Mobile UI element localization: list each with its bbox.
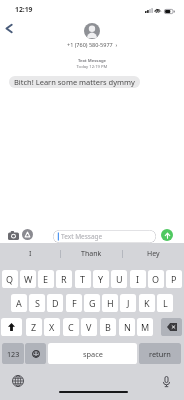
staticText: J bbox=[127, 297, 130, 309]
staticText: B bbox=[105, 321, 111, 333]
staticText: Q bbox=[6, 273, 14, 285]
staticText: 123 bbox=[7, 349, 20, 359]
button[interactable]: P bbox=[166, 270, 182, 288]
button[interactable]: I bbox=[130, 270, 146, 288]
staticText: U bbox=[116, 273, 123, 285]
button[interactable]: U bbox=[111, 270, 127, 288]
button[interactable]: O bbox=[148, 270, 164, 288]
staticText: Thank bbox=[81, 249, 102, 259]
button[interactable]: Camera bbox=[6, 228, 20, 242]
staticText: Text Message bbox=[61, 232, 103, 241]
button[interactable]: E bbox=[38, 270, 54, 288]
button[interactable]: Thank bbox=[61, 243, 122, 265]
staticText: Hey bbox=[147, 249, 160, 259]
staticText: P bbox=[171, 273, 177, 285]
button[interactable]: Y bbox=[93, 270, 109, 288]
button[interactable]: J bbox=[120, 294, 136, 312]
staticText: T bbox=[80, 273, 86, 285]
staticText: V bbox=[86, 321, 92, 333]
staticText: F bbox=[72, 297, 77, 309]
button[interactable]: Backspace bbox=[161, 318, 182, 336]
button[interactable]: Send bbox=[161, 229, 173, 241]
button[interactable]: L bbox=[157, 294, 173, 312]
staticText: S bbox=[35, 297, 40, 309]
button[interactable]: Apps bbox=[22, 229, 33, 240]
button[interactable]: Z bbox=[26, 318, 42, 336]
staticText: E bbox=[43, 273, 49, 285]
button[interactable]: Back bbox=[1, 20, 17, 37]
staticText: +1 (760) 580-5977 › bbox=[67, 41, 118, 48]
button[interactable]: W bbox=[20, 270, 36, 288]
button[interactable]: +1 (760) 580-5977 › bbox=[0, 23, 184, 48]
button[interactable]: Q bbox=[2, 270, 18, 288]
staticText: return bbox=[149, 349, 171, 359]
button[interactable]: I bbox=[0, 243, 60, 265]
button[interactable]: D bbox=[47, 294, 63, 312]
staticText: I bbox=[29, 249, 32, 259]
button[interactable]: B bbox=[100, 318, 116, 336]
button[interactable]: Dictate bbox=[159, 374, 173, 388]
staticText: W bbox=[24, 273, 33, 285]
button[interactable]: H bbox=[102, 294, 118, 312]
staticText: D bbox=[52, 297, 59, 309]
staticText: O bbox=[152, 273, 160, 285]
button[interactable]: T bbox=[75, 270, 91, 288]
button[interactable]: 123 bbox=[2, 343, 24, 364]
staticText: A bbox=[16, 297, 22, 309]
staticText: G bbox=[89, 297, 96, 309]
button[interactable]: R bbox=[56, 270, 72, 288]
staticText: N bbox=[124, 321, 131, 333]
staticText: Y bbox=[98, 273, 104, 285]
staticText: H bbox=[107, 297, 114, 309]
button[interactable]: Bitch! Learn some matters dymmy bbox=[9, 76, 140, 88]
staticText: R bbox=[61, 273, 67, 285]
staticText: Z bbox=[31, 321, 37, 333]
button[interactable]: Text Message bbox=[53, 230, 156, 243]
button[interactable]: space bbox=[48, 343, 137, 364]
button[interactable]: A bbox=[11, 294, 27, 312]
staticText: space bbox=[83, 349, 103, 359]
button[interactable]: Change keyboard bbox=[11, 374, 25, 388]
button[interactable]: N bbox=[119, 318, 135, 336]
button[interactable]: K bbox=[139, 294, 155, 312]
button[interactable]: return bbox=[139, 343, 181, 364]
button[interactable]: Shift bbox=[1, 318, 22, 336]
staticText: Bitch! Learn some matters dymmy bbox=[14, 77, 135, 87]
button[interactable]: S bbox=[29, 294, 45, 312]
staticText: Today 12:19 PM bbox=[0, 64, 184, 70]
staticText: C bbox=[68, 321, 74, 333]
button[interactable]: F bbox=[66, 294, 82, 312]
staticText: X bbox=[49, 321, 55, 333]
staticText: K bbox=[144, 297, 150, 309]
button[interactable]: Emoji bbox=[25, 343, 46, 364]
staticText: M bbox=[141, 321, 150, 333]
staticText: L bbox=[163, 297, 168, 309]
button[interactable]: C bbox=[63, 318, 79, 336]
button[interactable]: Hey bbox=[123, 243, 184, 265]
staticText: Text Message bbox=[0, 58, 184, 64]
button[interactable]: G bbox=[84, 294, 100, 312]
button[interactable]: V bbox=[81, 318, 97, 336]
staticText: I bbox=[136, 273, 140, 285]
button[interactable]: M bbox=[137, 318, 153, 336]
staticText: 12:19 bbox=[15, 5, 33, 14]
button[interactable]: X bbox=[44, 318, 60, 336]
